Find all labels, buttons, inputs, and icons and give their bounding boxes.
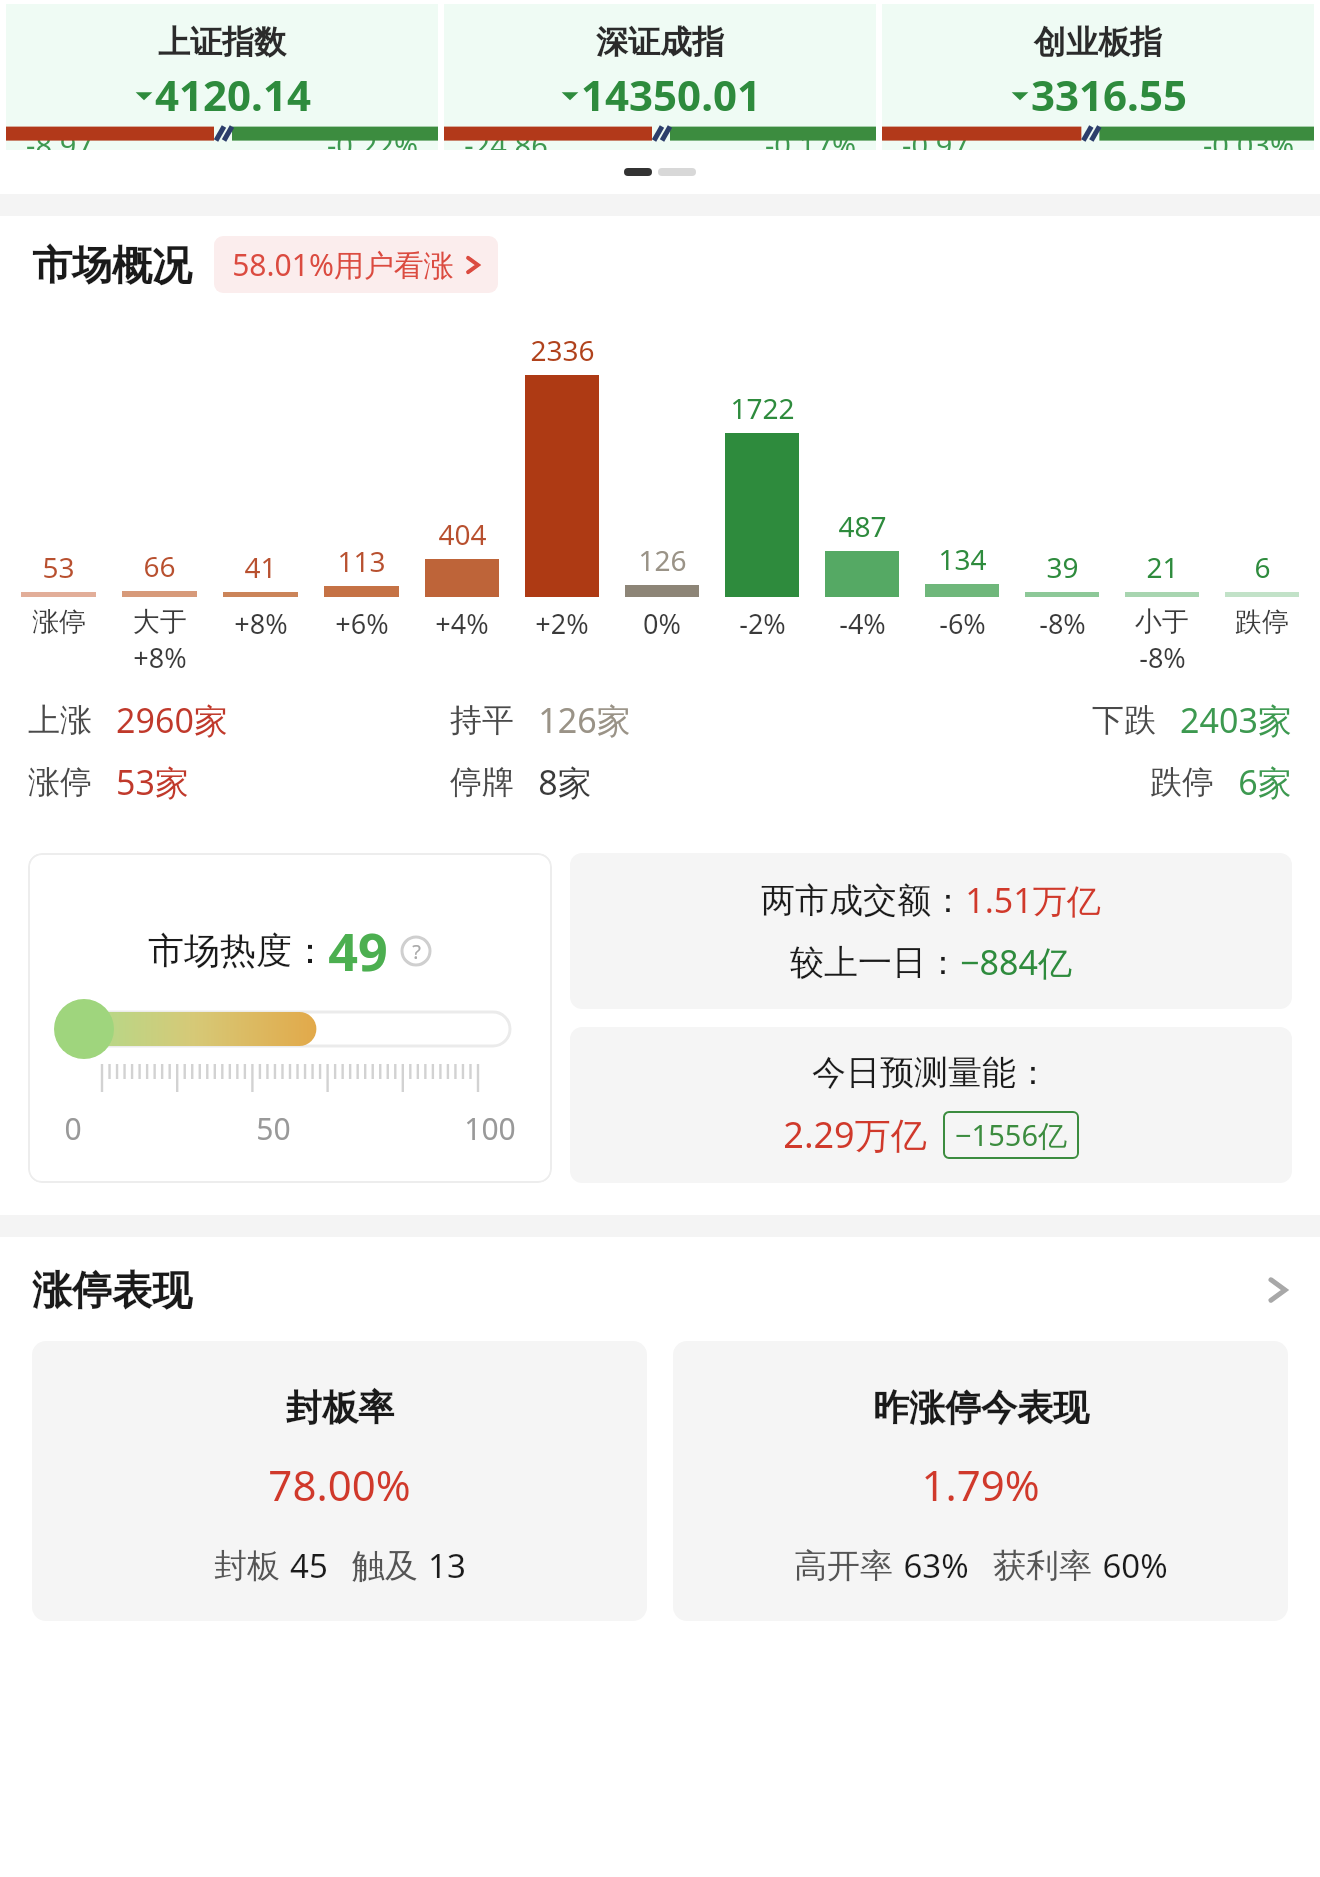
staticText: 4120.14: [155, 66, 311, 123]
staticText: 404: [438, 515, 487, 553]
staticText: -0.17%: [765, 125, 856, 150]
staticText: 39: [1046, 548, 1079, 586]
other: More: [1268, 1273, 1288, 1307]
button[interactable]: 涨停表现: [0, 1265, 1320, 1315]
staticText: 创业板指: [1034, 22, 1162, 62]
button[interactable]: 创业板指: [882, 4, 1314, 150]
staticText: 市场概况: [32, 240, 192, 290]
staticText: 63%: [903, 1543, 969, 1588]
staticText: -0.97: [902, 125, 969, 150]
staticText: -0.03%: [1203, 125, 1294, 150]
button[interactable]: 昨涨停今表现: [673, 1341, 1288, 1621]
button[interactable]: 58.01%用户看涨: [214, 236, 498, 293]
staticText: -0.22%: [327, 125, 418, 150]
staticText: 高开率: [794, 1545, 893, 1587]
staticText: ?: [412, 938, 421, 965]
staticText: 涨停: [32, 605, 86, 639]
staticText: 2403家: [1180, 697, 1292, 743]
staticText: 1.51万亿: [965, 877, 1101, 923]
staticText: 41: [244, 548, 277, 586]
staticText: 78.00%: [268, 1456, 411, 1513]
staticText: +8%: [133, 639, 187, 676]
staticText: 涨停: [28, 762, 92, 802]
staticText: 1.79%: [921, 1456, 1040, 1513]
staticText: -24.86: [464, 125, 548, 150]
staticText: 0: [64, 1108, 82, 1149]
staticText: 昨涨停今表现: [873, 1385, 1089, 1430]
staticText: 跌停: [1235, 605, 1289, 639]
staticText: 53: [42, 548, 75, 586]
staticText: 封板: [214, 1545, 280, 1587]
staticText: 49: [328, 915, 388, 986]
staticText: 上涨: [28, 700, 92, 740]
button[interactable]: 封板率: [32, 1341, 647, 1621]
staticText: 封板率: [286, 1385, 394, 1430]
staticText: 113: [337, 542, 386, 580]
staticText: 2960家: [116, 697, 228, 743]
staticText: 6: [1254, 548, 1271, 586]
button[interactable]: 上证指数: [6, 4, 438, 150]
staticText: -2%: [739, 605, 786, 642]
staticText: 21: [1146, 548, 1179, 586]
staticText: +4%: [435, 605, 489, 642]
staticText: 2336: [530, 331, 595, 369]
staticText: 停牌: [450, 762, 514, 802]
button[interactable]: 今日预测量能：: [570, 1027, 1292, 1183]
staticText: 跌停: [1150, 762, 1214, 802]
staticText: -4%: [839, 605, 886, 642]
staticText: 1722: [730, 389, 795, 427]
staticText: 134: [938, 540, 987, 578]
staticText: 50: [256, 1108, 291, 1149]
staticText: −1556亿: [955, 1115, 1067, 1155]
staticText: 13: [428, 1543, 466, 1588]
staticText: 小于: [1135, 605, 1189, 639]
staticText: −884亿: [960, 939, 1072, 985]
staticText: 获利率: [993, 1545, 1092, 1587]
staticText: 126: [638, 541, 687, 579]
staticText: 487: [838, 507, 887, 545]
staticText: 上证指数: [158, 22, 286, 62]
staticText: 下跌: [1092, 700, 1156, 740]
staticText: +2%: [535, 605, 589, 642]
staticText: 14350.01: [581, 66, 761, 123]
staticText: 涨停表现: [32, 1265, 192, 1315]
staticText: 6家: [1238, 759, 1292, 805]
staticText: 45: [290, 1543, 328, 1588]
staticText: 60%: [1102, 1543, 1168, 1588]
staticText: 深证成指: [596, 22, 724, 62]
staticText: 66: [143, 547, 176, 585]
staticText: 58.01%用户看涨: [232, 244, 454, 285]
button[interactable]: 深证成指: [444, 4, 876, 150]
staticText: 今日预测量能：: [812, 1051, 1050, 1094]
staticText: 2.29万亿: [783, 1110, 927, 1159]
staticText: 100: [464, 1108, 516, 1149]
staticText: 8家: [538, 759, 592, 805]
staticText: 大于: [133, 605, 187, 639]
staticText: +8%: [234, 605, 288, 642]
staticText: 较上一日：: [790, 941, 960, 984]
staticText: 市场热度：: [148, 928, 328, 973]
staticText: 0%: [643, 605, 681, 642]
staticText: 3316.55: [1031, 66, 1187, 123]
staticText: 触及: [352, 1545, 418, 1587]
staticText: 两市成交额：: [761, 879, 965, 922]
staticText: -6%: [939, 605, 986, 642]
button[interactable]: 两市成交额：: [570, 853, 1292, 1009]
staticText: 53家: [116, 759, 189, 805]
staticText: -8%: [1139, 639, 1186, 676]
staticText: +6%: [335, 605, 389, 642]
staticText: 持平: [450, 700, 514, 740]
button[interactable]: 市场热度：: [28, 853, 552, 1183]
staticText: -8.97: [26, 125, 93, 150]
staticText: 126家: [538, 697, 631, 743]
staticText: -8%: [1039, 605, 1086, 642]
